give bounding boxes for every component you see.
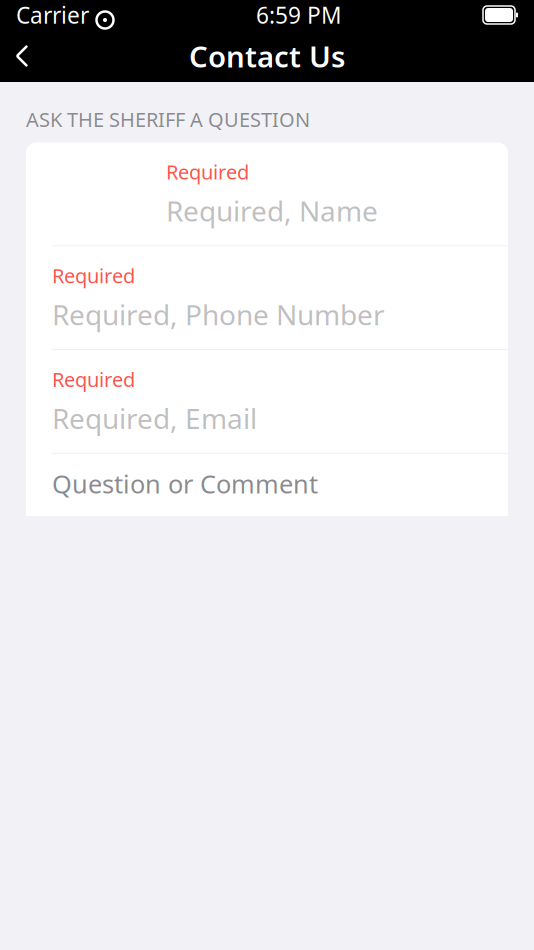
staticText: ASK THE SHERIFF A QUESTION	[26, 106, 310, 133]
staticText: Required, Email	[52, 400, 257, 437]
staticText: Contact Us	[189, 36, 345, 75]
staticText: Required	[52, 262, 135, 289]
button[interactable]: Back	[0, 34, 44, 78]
staticText: 6:59 PM	[256, 0, 342, 30]
staticText: Required	[166, 159, 249, 185]
staticText: Required	[52, 366, 135, 393]
staticText: Question or Comment	[52, 467, 318, 500]
staticText: Required, Phone Number	[52, 296, 385, 333]
staticText: Required, Name	[166, 192, 378, 229]
staticText: Carrier	[16, 0, 89, 30]
